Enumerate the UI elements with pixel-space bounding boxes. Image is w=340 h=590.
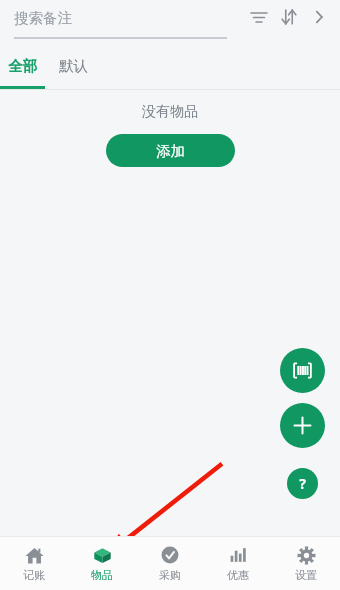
button[interactable]: 采购: [136, 536, 204, 590]
button[interactable]: More: [304, 2, 334, 32]
button[interactable]: 添加: [106, 134, 235, 167]
staticText: 添加: [156, 142, 185, 160]
button[interactable]: 搜索备注: [14, 0, 227, 44]
button[interactable]: Scan barcode: [280, 348, 325, 393]
button[interactable]: 设置: [272, 536, 340, 590]
staticText: 记账: [23, 568, 45, 582]
button[interactable]: 优惠: [204, 536, 272, 590]
staticText: ?: [299, 474, 306, 493]
staticText: 设置: [295, 568, 317, 582]
button[interactable]: Add: [280, 403, 325, 448]
staticText: 采购: [159, 568, 181, 582]
staticText: 没有物品: [142, 103, 198, 121]
button[interactable]: 记账: [0, 536, 68, 590]
button[interactable]: 物品: [68, 536, 136, 590]
staticText: 优惠: [227, 568, 249, 582]
staticText: 搜索备注: [14, 9, 72, 27]
button[interactable]: Filter: [244, 2, 274, 32]
button[interactable]: 全部: [0, 45, 45, 87]
staticText: 默认: [59, 57, 88, 75]
button[interactable]: Sort: [274, 2, 304, 32]
staticText: 全部: [8, 57, 37, 75]
button[interactable]: Help: [287, 468, 318, 499]
button[interactable]: 默认: [45, 45, 101, 87]
staticText: 物品: [91, 568, 113, 582]
